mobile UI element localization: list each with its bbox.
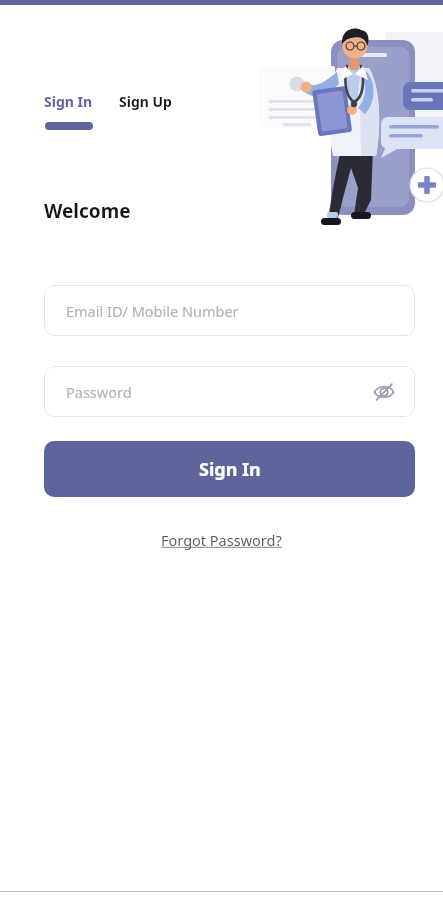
button[interactable]: Sign In [44, 92, 97, 111]
staticText: Sign In [199, 457, 261, 482]
button[interactable]: Sign In [44, 441, 415, 497]
button[interactable]: Forgot Password? [153, 526, 290, 554]
staticText: Sign Up [119, 92, 172, 111]
staticText: Password [66, 382, 132, 402]
staticText: Forgot Password? [161, 530, 282, 550]
button[interactable]: Email ID/ Mobile Number [44, 285, 415, 336]
button[interactable]: Show password [369, 377, 399, 407]
button[interactable]: Password [44, 366, 415, 417]
staticText: Welcome [44, 198, 131, 224]
staticText: Sign In [44, 92, 93, 111]
button[interactable]: Sign Up [119, 92, 176, 111]
staticText: Email ID/ Mobile Number [66, 301, 239, 321]
